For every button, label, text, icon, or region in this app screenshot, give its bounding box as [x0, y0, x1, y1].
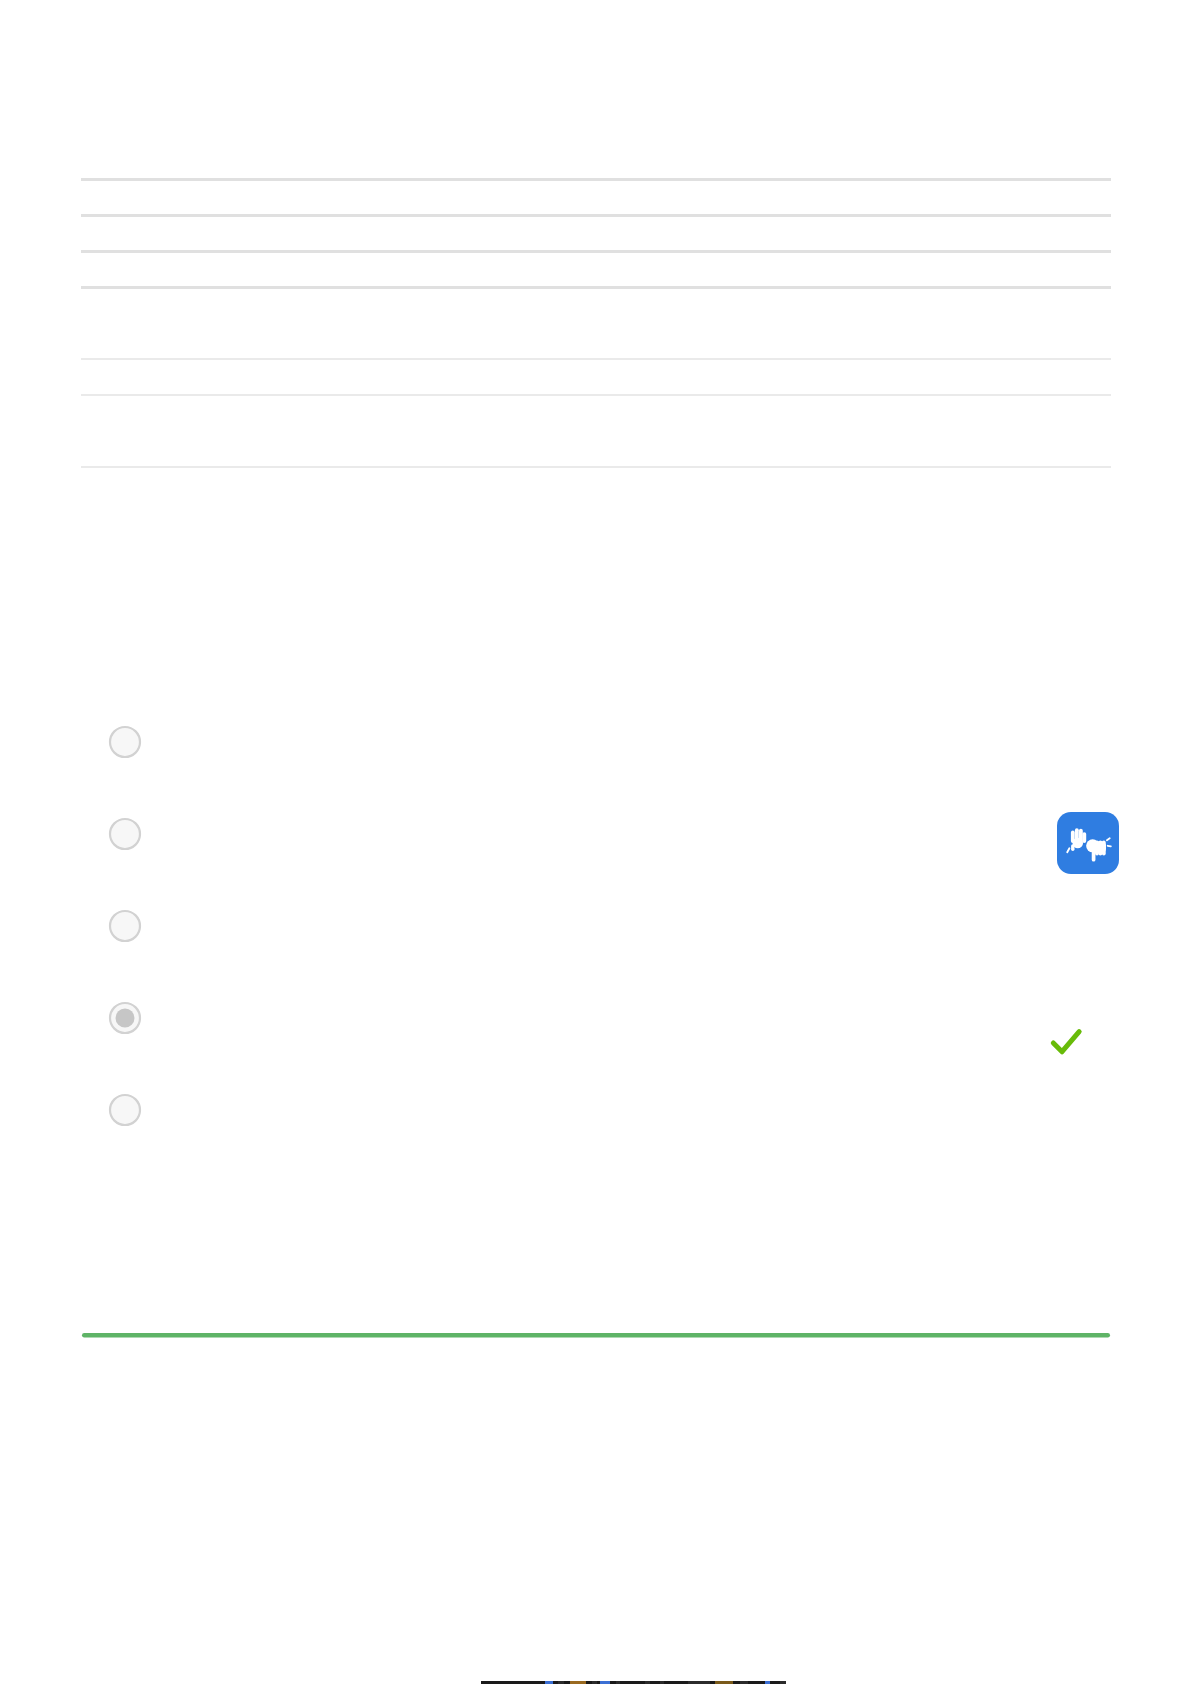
- button[interactable]: Option 5: [103, 1088, 147, 1132]
- button[interactable]: Option 3: [103, 904, 147, 948]
- button[interactable]: Option 1: [103, 720, 147, 764]
- button[interactable]: Selected: [1048, 1024, 1086, 1062]
- button[interactable]: Option 4: [103, 996, 147, 1040]
- button[interactable]: Sign language: [1057, 812, 1119, 874]
- button[interactable]: Option 2: [103, 812, 147, 856]
